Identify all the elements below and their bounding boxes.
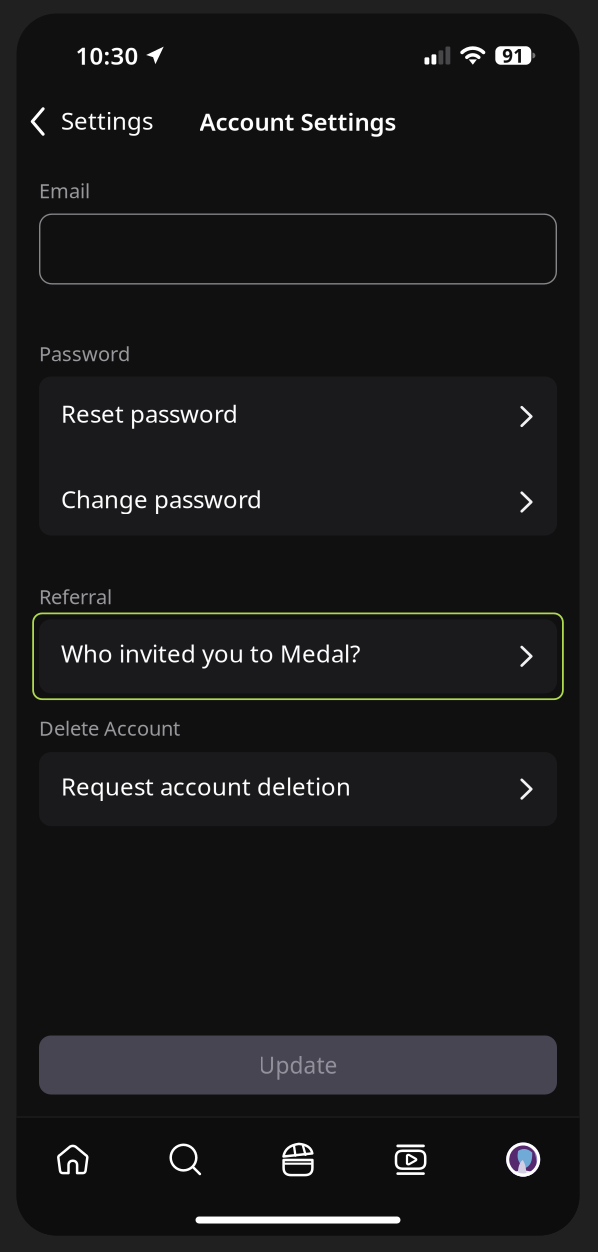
button[interactable]: Home xyxy=(16,1116,129,1202)
staticText: Referral xyxy=(39,583,112,610)
staticText: Delete Account xyxy=(39,715,180,741)
staticText: Account Settings xyxy=(199,106,396,137)
staticText: 91 xyxy=(502,43,524,68)
button[interactable]: Settings xyxy=(16,95,167,148)
staticText: Who invited you to Medal? xyxy=(61,637,360,669)
button[interactable]: Profile xyxy=(467,1116,579,1202)
button[interactable]: Change password xyxy=(39,468,557,535)
staticText: Update xyxy=(258,1050,337,1080)
staticText: Settings xyxy=(61,105,153,136)
staticText: Reset password xyxy=(61,398,238,429)
button[interactable]: Clips xyxy=(242,1116,354,1202)
button[interactable]: Reset password xyxy=(39,376,557,456)
staticText: 10:30 xyxy=(75,40,138,71)
button[interactable]: Update xyxy=(39,1035,557,1094)
button[interactable]: Who invited you to Medal? xyxy=(32,612,564,700)
staticText: Email xyxy=(39,177,90,204)
button[interactable]: Search xyxy=(129,1116,242,1202)
button[interactable]: Request account deletion xyxy=(39,752,557,826)
staticText: Request account deletion xyxy=(61,770,351,802)
staticText: Password xyxy=(39,340,130,367)
staticText: Change password xyxy=(61,483,262,515)
button[interactable]: Videos xyxy=(354,1116,467,1202)
